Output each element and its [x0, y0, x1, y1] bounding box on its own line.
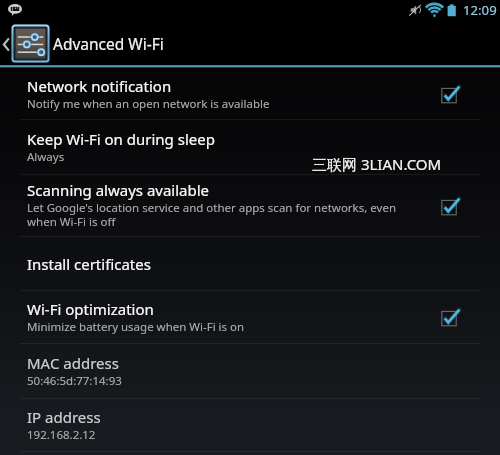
staticText: IP address [27, 407, 101, 427]
button[interactable]: Install certificates [0, 237, 500, 290]
button[interactable]: Toggle Wi-Fi optimization [440, 305, 464, 329]
staticText: Advanced Wi-Fi [53, 33, 164, 54]
button[interactable]: Scanning always available [0, 175, 500, 236]
button[interactable]: Toggle Network notification [440, 82, 464, 106]
button[interactable]: Wi-Fi optimization [0, 291, 500, 343]
staticText: Wi-Fi optimization [27, 299, 154, 319]
button[interactable]: IP address [0, 399, 500, 451]
staticText: Keep Wi-Fi on during sleep [27, 129, 215, 149]
staticText: Scanning always available [27, 180, 210, 200]
button[interactable]: Network notification [0, 68, 500, 119]
staticText: 50:46:5d:77:14:93 [27, 373, 122, 389]
staticText: Let Google's location service and other … [27, 200, 396, 230]
staticText: Install certificates [27, 254, 151, 274]
button[interactable]: MAC address [0, 344, 500, 398]
staticText: Notify me when an open network is availa… [27, 96, 270, 112]
staticText: Always [27, 149, 65, 165]
staticText: MAC address [27, 353, 119, 373]
staticText: Network notification [27, 76, 172, 96]
staticText: 192.168.2.12 [27, 427, 96, 443]
button[interactable]: Toggle Scanning always available [440, 194, 464, 218]
staticText: 12:09 [463, 1, 497, 19]
staticText: Minimize battery usage when Wi-Fi is on [27, 319, 245, 335]
staticText: 三联网 3LIAN.COM [312, 154, 442, 174]
button[interactable]: Keep Wi-Fi on during sleep [0, 120, 500, 174]
button[interactable]: Navigate up [0, 20, 500, 57]
